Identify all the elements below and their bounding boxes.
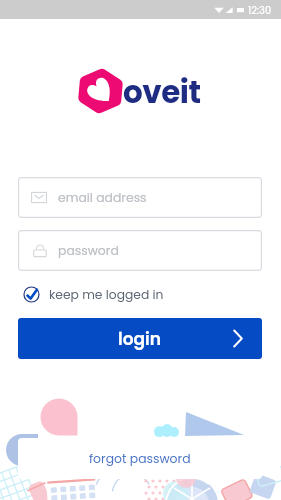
button[interactable]: forgot password — [18, 438, 262, 479]
staticText: login — [118, 327, 162, 351]
button[interactable]: password — [18, 230, 262, 271]
button[interactable]: email address — [18, 177, 262, 218]
button[interactable]: keep me logged in — [23, 286, 164, 303]
button[interactable]: login — [18, 318, 262, 359]
staticText: oveit — [123, 70, 201, 113]
staticText: 12:30 — [248, 3, 272, 17]
staticText: forgot password — [89, 450, 191, 467]
staticText: keep me logged in — [49, 286, 164, 303]
staticText: password — [58, 242, 119, 259]
staticText: email address — [58, 189, 147, 206]
